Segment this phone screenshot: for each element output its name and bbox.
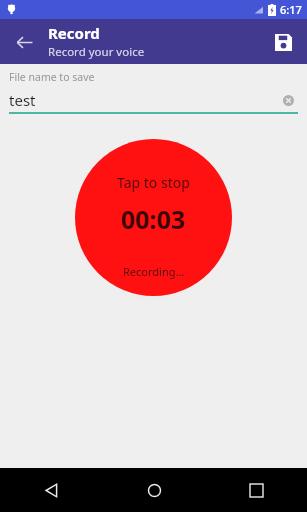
- staticText: Record your voice: [48, 44, 145, 60]
- staticText: test: [9, 90, 36, 110]
- staticText: Record: [48, 23, 100, 43]
- staticText: 6:17: [280, 2, 302, 17]
- staticText: Recording...: [123, 264, 185, 279]
- button[interactable]: File name to save: [0, 64, 307, 114]
- button[interactable]: Tap to stop: [75, 139, 232, 296]
- staticText: Tap to stop: [117, 173, 190, 192]
- button[interactable]: Back: [0, 468, 103, 512]
- button[interactable]: Home: [103, 468, 205, 512]
- staticText: 00:03: [121, 202, 186, 236]
- staticText: File name to save: [9, 70, 95, 84]
- button[interactable]: Clear text: [278, 90, 298, 110]
- button[interactable]: Back: [6, 24, 42, 60]
- button[interactable]: Save: [265, 24, 301, 60]
- button[interactable]: Recent apps: [205, 468, 307, 512]
